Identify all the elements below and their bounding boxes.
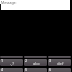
- staticText: 2: [25, 59, 28, 63]
- staticText: 1: [1, 59, 4, 63]
- button[interactable]: [48, 56, 71, 58]
- button[interactable]: [24, 56, 47, 58]
- staticText: def: [57, 61, 64, 66]
- staticText: abc: [33, 61, 40, 66]
- button[interactable]: 4: [0, 68, 23, 72]
- staticText: 4: [1, 68, 4, 72]
- staticText: .,?: [10, 61, 15, 66]
- button[interactable]: 6: [48, 68, 71, 72]
- button[interactable]: 3: [48, 59, 71, 66]
- button[interactable]: 5: [24, 68, 47, 72]
- button[interactable]: 2: [24, 59, 47, 66]
- staticText: 5: [25, 68, 28, 72]
- staticText: 3: [49, 59, 52, 63]
- button[interactable]: Message:: [0, 0, 70, 10]
- button[interactable]: 1: [0, 59, 23, 66]
- staticText: Message:: [1, 0, 17, 5]
- button[interactable]: [0, 56, 23, 58]
- staticText: 6: [49, 68, 52, 72]
